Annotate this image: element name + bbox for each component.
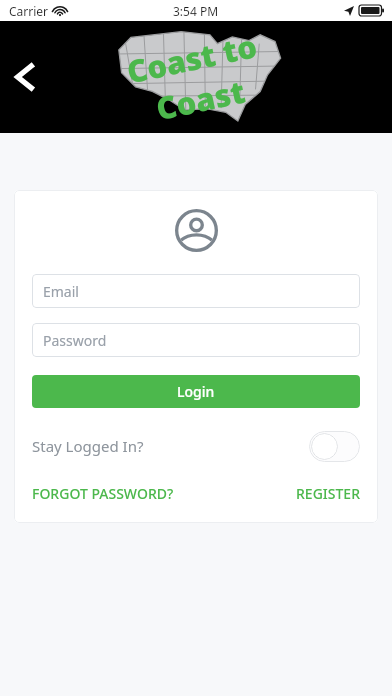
button[interactable]: Email xyxy=(32,274,360,308)
button[interactable]: Password xyxy=(32,323,360,357)
staticText: Login xyxy=(177,382,215,401)
staticText: FORGOT PASSWORD? xyxy=(32,484,174,503)
staticText: 3:54 PM xyxy=(173,3,219,19)
staticText: Coast to Coast xyxy=(96,19,296,139)
button[interactable]: Login xyxy=(32,375,360,408)
staticText: Stay Logged In? xyxy=(32,436,144,456)
staticText: REGISTER xyxy=(296,484,360,503)
staticText: Email xyxy=(43,282,79,301)
button[interactable]: FORGOT PASSWORD? xyxy=(32,484,174,503)
button[interactable]: Stay logged in toggle xyxy=(309,431,360,462)
button[interactable]: REGISTER xyxy=(296,484,360,503)
staticText: Password xyxy=(43,331,107,350)
staticText: Carrier xyxy=(9,3,49,19)
button[interactable]: Back xyxy=(4,57,44,97)
